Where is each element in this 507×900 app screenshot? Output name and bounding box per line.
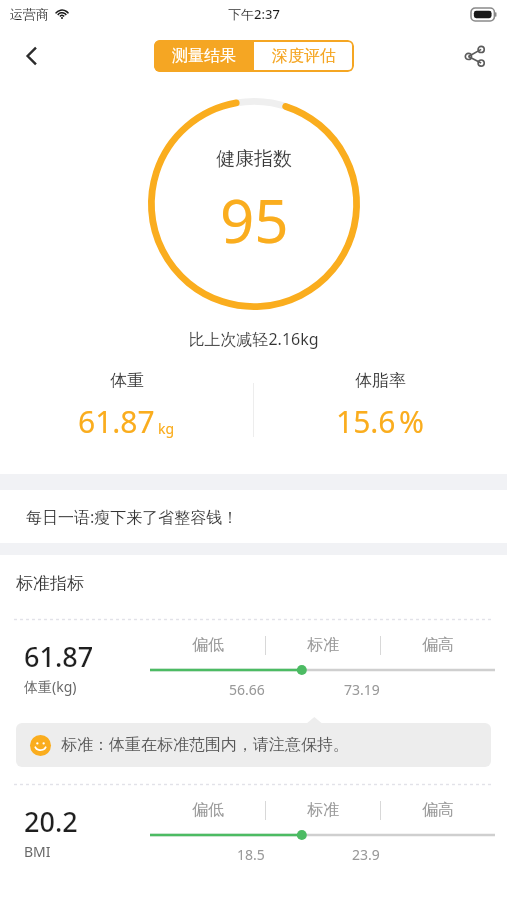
- staticText: 偏高: [422, 635, 454, 655]
- staticText: 61.87: [24, 638, 94, 675]
- staticText: 标准：体重在标准范围内，请注意保持。: [61, 735, 349, 755]
- staticText: 体重(kg): [24, 677, 77, 696]
- staticText: %: [399, 401, 424, 442]
- staticText: 偏高: [422, 800, 454, 820]
- staticText: BMI: [24, 842, 51, 861]
- staticText: 体脂率: [355, 370, 406, 391]
- staticText: 测量结果: [172, 46, 236, 66]
- button[interactable]: 深度评估: [254, 40, 354, 72]
- staticText: 73.19: [344, 680, 380, 699]
- staticText: 标准: [307, 635, 339, 655]
- staticText: 61.87: [78, 401, 155, 442]
- staticText: 运营商: [10, 6, 49, 22]
- staticText: 偏低: [192, 635, 224, 655]
- staticText: 比上次减轻2.16kg: [0, 328, 507, 350]
- button[interactable]: 20.2: [0, 788, 507, 876]
- staticText: 深度评估: [272, 46, 336, 66]
- staticText: 每日一语:瘦下来了省整容钱！: [26, 506, 239, 528]
- staticText: 标准: [307, 800, 339, 820]
- button[interactable]: Back: [8, 32, 56, 80]
- staticText: 23.9: [352, 845, 380, 864]
- staticText: 标准指标: [16, 573, 84, 594]
- staticText: 健康指数: [216, 147, 292, 171]
- button[interactable]: 61.87: [0, 623, 507, 711]
- button[interactable]: 测量结果: [154, 40, 254, 72]
- staticText: 20.2: [24, 803, 78, 840]
- staticText: 体重: [110, 370, 144, 391]
- button[interactable]: Share: [453, 34, 497, 78]
- staticText: 95: [220, 179, 289, 261]
- staticText: 18.5: [237, 845, 265, 864]
- button[interactable]: 标准：体重在标准范围内，请注意保持。: [16, 723, 491, 767]
- staticText: 下午2:37: [228, 5, 280, 23]
- staticText: kg: [158, 419, 175, 438]
- staticText: 56.66: [229, 680, 265, 699]
- staticText: 偏低: [192, 800, 224, 820]
- staticText: 15.6: [336, 401, 396, 442]
